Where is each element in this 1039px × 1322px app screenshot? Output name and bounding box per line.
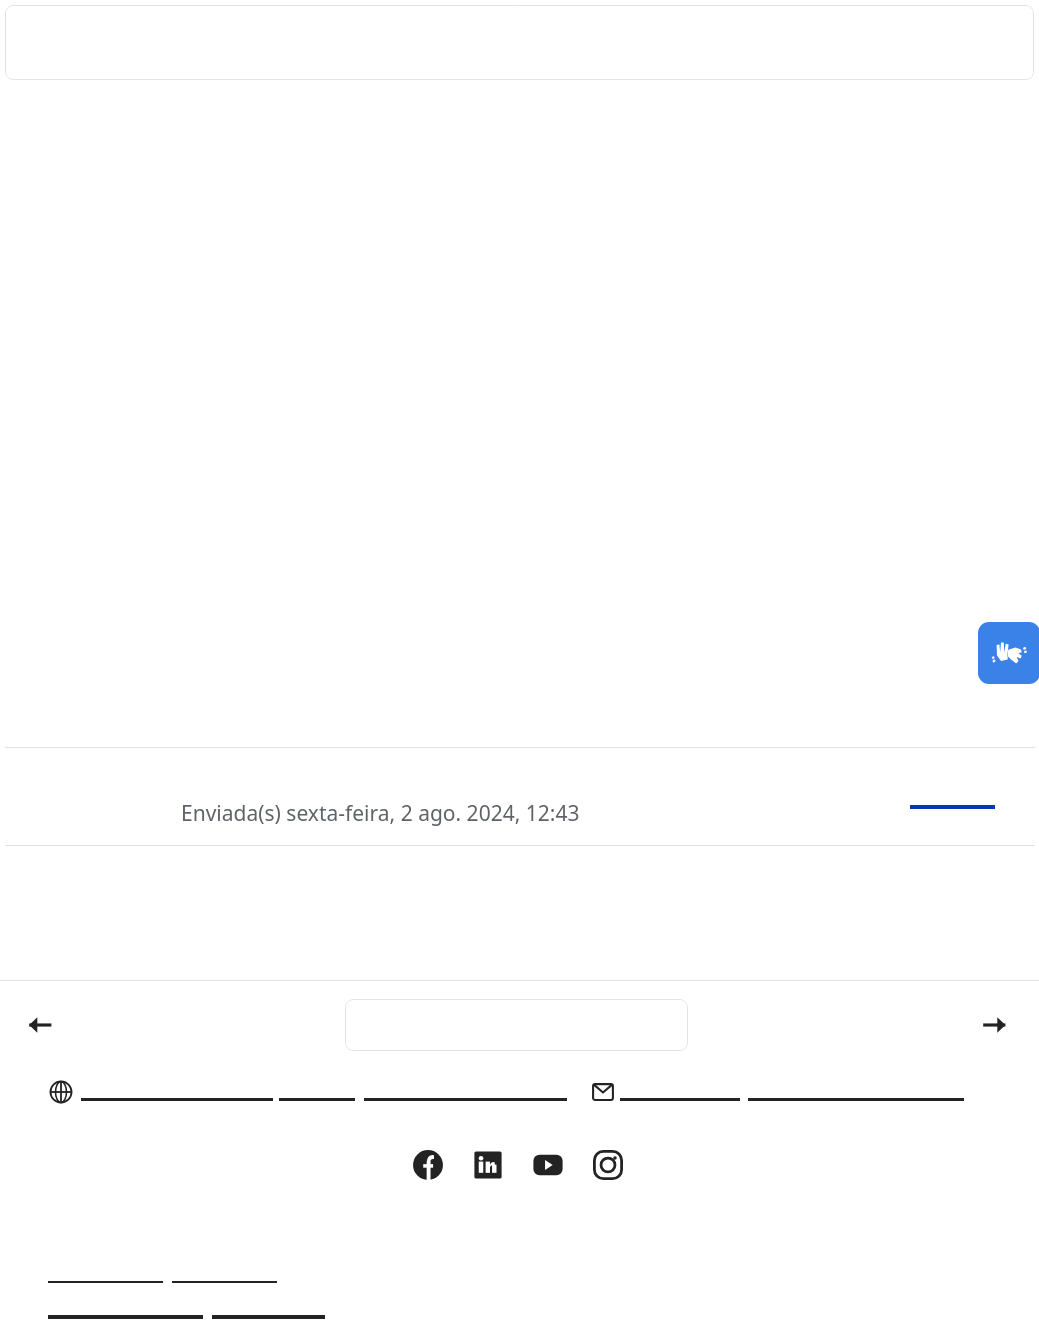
button[interactable] (345, 999, 688, 1051)
button[interactable]: Acessibilidade em Libras (978, 622, 1039, 684)
button[interactable]: Rede social (530, 1147, 566, 1183)
button[interactable]: Site (47, 1078, 75, 1106)
button[interactable]: Próximo (972, 1003, 1016, 1047)
button[interactable]: Anterior (18, 1003, 62, 1047)
button[interactable]: Rede social (470, 1147, 506, 1183)
button[interactable]: E-mail (589, 1078, 617, 1106)
button[interactable]: Rede social (410, 1147, 446, 1183)
button[interactable] (5, 5, 1034, 80)
staticText: Enviada(s) sexta-feira, 2 ago. 2024, 12:… (181, 799, 580, 828)
button[interactable]: Rede social (590, 1147, 626, 1183)
